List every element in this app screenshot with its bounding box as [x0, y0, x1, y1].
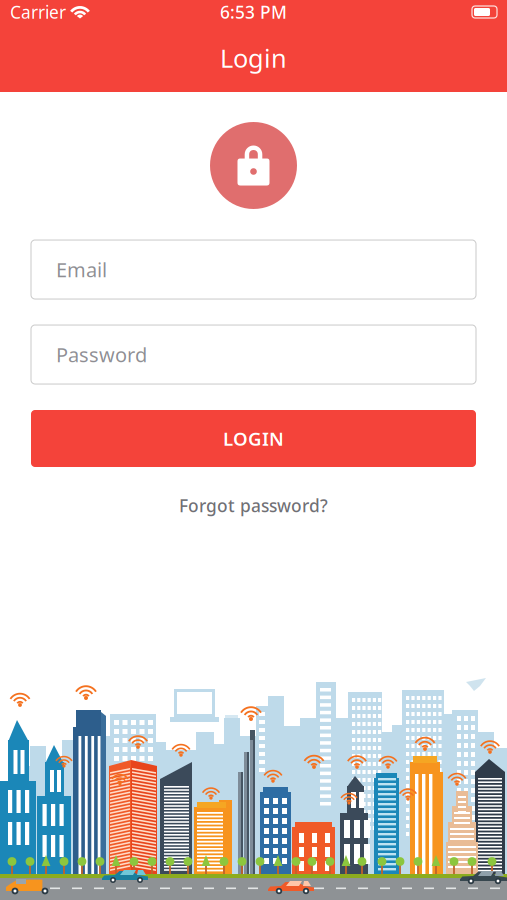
button[interactable]: Forgot password?: [179, 494, 328, 517]
staticText: Login: [220, 41, 287, 75]
staticText: Forgot password?: [179, 494, 328, 517]
staticText: Carrier: [10, 0, 66, 23]
staticText: Email: [56, 256, 107, 283]
button[interactable]: LOGIN: [0, 410, 507, 467]
staticText: Password: [56, 341, 147, 368]
staticText: LOGIN: [223, 426, 284, 451]
staticText: 6:53 PM: [220, 0, 287, 23]
